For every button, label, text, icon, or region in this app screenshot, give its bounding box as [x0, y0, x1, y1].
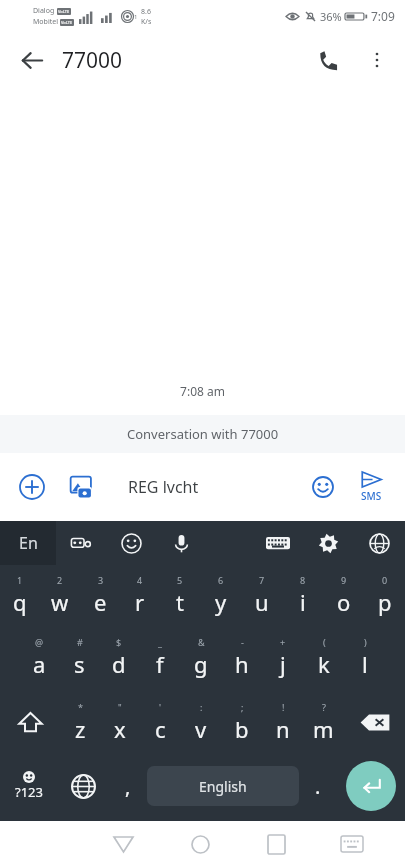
button[interactable]: REG lvcht: [108, 462, 397, 512]
staticText: j: [280, 649, 286, 679]
staticText: 5: [177, 574, 183, 586]
staticText: !: [282, 701, 285, 713]
staticText: k: [318, 649, 330, 679]
staticText: n: [276, 714, 290, 744]
button[interactable]: 0: [364, 565, 405, 625]
staticText: +: [280, 636, 286, 648]
staticText: f: [156, 649, 164, 679]
staticText: 9: [341, 574, 347, 586]
staticText: Dialog: [33, 6, 55, 16]
button[interactable]: Back: [8, 36, 56, 84]
button[interactable]: 1: [0, 565, 40, 625]
staticText: .: [315, 773, 321, 800]
staticText: b: [235, 714, 249, 744]
button[interactable]: _: [139, 625, 180, 690]
staticText: h: [235, 649, 249, 679]
staticText: c: [155, 714, 166, 744]
staticText: -: [241, 636, 244, 648]
button[interactable]: 2: [40, 565, 80, 625]
button[interactable]: #: [59, 625, 99, 690]
staticText: :: [200, 701, 203, 713]
button[interactable]: ): [344, 625, 385, 690]
button[interactable]: .: [299, 755, 337, 817]
staticText: ): [364, 636, 367, 648]
button[interactable]: Enter: [346, 761, 396, 811]
button[interactable]: 7: [241, 565, 282, 625]
staticText: 1: [134, 13, 138, 21]
staticText: v: [195, 714, 207, 744]
button[interactable]: More options: [353, 36, 401, 84]
staticText: 3: [98, 574, 104, 586]
staticText: 0: [382, 574, 388, 586]
staticText: m: [313, 714, 334, 744]
button[interactable]: Symbols: [0, 755, 58, 817]
button[interactable]: English: [147, 766, 299, 806]
button[interactable]: Recents: [238, 821, 314, 867]
button[interactable]: !: [262, 690, 303, 755]
staticText: p: [378, 587, 392, 617]
staticText: En: [19, 532, 38, 554]
button[interactable]: 9: [323, 565, 364, 625]
staticText: ?123: [15, 783, 43, 801]
button[interactable]: Language: [354, 521, 405, 565]
staticText: 2: [57, 574, 63, 586]
button[interactable]: ?: [303, 690, 344, 755]
button[interactable]: ': [140, 690, 180, 755]
button[interactable]: Shift: [0, 690, 60, 755]
staticText: _: [158, 636, 162, 648]
button[interactable]: (: [303, 625, 344, 690]
button[interactable]: Send SMS: [345, 462, 397, 512]
button[interactable]: *: [60, 690, 100, 755]
button[interactable]: Voice input: [156, 521, 206, 565]
button[interactable]: 3: [80, 565, 120, 625]
button[interactable]: Add attachment: [8, 463, 56, 511]
staticText: z: [75, 714, 86, 744]
button[interactable]: Change language: [58, 755, 109, 817]
staticText: 8: [300, 574, 306, 586]
button[interactable]: Stickers: [56, 521, 106, 565]
staticText: ,: [125, 773, 131, 800]
staticText: 7:09: [371, 8, 395, 24]
button[interactable]: $: [99, 625, 139, 690]
staticText: 1: [17, 574, 23, 586]
staticText: ': [159, 701, 162, 713]
staticText: r: [135, 587, 145, 617]
button[interactable]: En: [0, 521, 56, 565]
button[interactable]: Switch keyboard: [314, 821, 390, 867]
button[interactable]: Call: [305, 36, 353, 84]
staticText: 4: [137, 574, 143, 586]
button[interactable]: ;: [221, 690, 262, 755]
button[interactable]: 8: [282, 565, 323, 625]
button[interactable]: &: [180, 625, 221, 690]
button[interactable]: 6: [200, 565, 241, 625]
button[interactable]: Backspace: [344, 690, 405, 755]
staticText: VoLTE: [58, 9, 70, 14]
button[interactable]: 5: [160, 565, 200, 625]
button[interactable]: ": [100, 690, 140, 755]
button[interactable]: Back: [85, 821, 162, 867]
staticText: SMS: [361, 489, 382, 503]
button[interactable]: Emoji: [301, 465, 345, 509]
button[interactable]: 4: [120, 565, 160, 625]
staticText: 8.6: [141, 7, 151, 17]
staticText: x: [114, 714, 126, 744]
staticText: VoLTE: [61, 20, 73, 25]
button[interactable]: @: [19, 625, 59, 690]
staticText: d: [112, 649, 126, 679]
button[interactable]: Gallery: [56, 463, 104, 511]
button[interactable]: +: [262, 625, 303, 690]
button[interactable]: Keyboard: [252, 521, 303, 565]
button[interactable]: -: [221, 625, 262, 690]
button[interactable]: Home: [162, 821, 238, 867]
button[interactable]: Settings: [303, 521, 354, 565]
staticText: K/s: [141, 17, 152, 27]
button[interactable]: :: [180, 690, 221, 755]
staticText: $: [116, 636, 122, 648]
staticText: l: [362, 649, 368, 679]
staticText: *: [78, 701, 83, 713]
staticText: w: [51, 587, 69, 617]
staticText: e: [94, 587, 107, 617]
staticText: y: [215, 587, 227, 617]
button[interactable]: ,: [109, 755, 147, 817]
button[interactable]: Emoji: [106, 521, 156, 565]
